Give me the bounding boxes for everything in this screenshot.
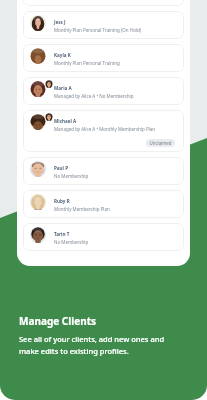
staticText: Maria A (54, 85, 72, 91)
staticText: Monthly Plan Personal Training (54, 60, 120, 66)
staticText: Monthly Membership Plan (54, 206, 110, 212)
staticText: Michael A (54, 118, 77, 124)
staticText: Manage Clients (19, 314, 97, 328)
staticText: Monthly Plan Personal Training (On Hold) (54, 27, 142, 33)
staticText: No Membership (54, 173, 89, 179)
button[interactable]: Kayla K (23, 44, 184, 72)
staticText: See all of your clients, add new ones an… (19, 334, 165, 357)
button[interactable]: Maria A (23, 77, 184, 105)
button[interactable]: Unclaimed (146, 139, 175, 147)
staticText: Unclaimed (149, 140, 172, 146)
staticText: No Membership (54, 239, 89, 245)
staticText: Paul P (54, 165, 69, 171)
button[interactable]: Paul P (23, 157, 184, 185)
button[interactable]: Jess J (23, 11, 184, 39)
staticText: Managed by Alice A • No Membership (54, 93, 134, 99)
staticText: Kayla K (54, 52, 71, 58)
staticText: Ruby R (54, 198, 70, 204)
button[interactable]: Michael A (23, 110, 184, 152)
button[interactable]: Tarin T (23, 223, 184, 251)
staticText: Jess J (54, 19, 66, 25)
staticText: Managed by Alice A • Monthly Membership … (54, 126, 156, 132)
button[interactable]: Ruby R (23, 190, 184, 218)
staticText: Tarin T (54, 231, 70, 237)
